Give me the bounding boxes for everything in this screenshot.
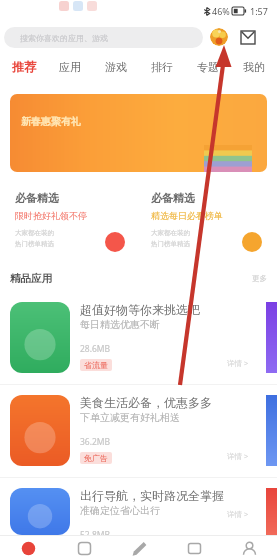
staticText: 游戏 xyxy=(105,60,127,74)
staticText: 免广告 xyxy=(84,453,108,463)
staticText: 28.6MB xyxy=(80,343,111,355)
button[interactable]: 我的 xyxy=(231,53,277,80)
staticText: 详情 > xyxy=(227,358,249,368)
button[interactable]: Home xyxy=(0,536,56,560)
staticText: 每日精选优惠不断 xyxy=(80,318,160,331)
button[interactable]: 专题 xyxy=(185,53,231,80)
staticText: 详情 > xyxy=(227,509,249,519)
staticText: 搜索你喜欢的应用、游戏 xyxy=(20,33,108,43)
staticText: 46% xyxy=(212,5,230,17)
button[interactable]: 美食生活必备，优惠多多 xyxy=(0,385,277,477)
staticText: 精品应用 xyxy=(10,272,52,285)
staticText: 排行 xyxy=(151,60,173,74)
staticText: 大家都在装的 xyxy=(15,229,54,237)
staticText: 超值好物等你来挑选吧 xyxy=(80,302,200,317)
staticText: 推荐 xyxy=(12,59,36,74)
staticText: 热门榜单精选 xyxy=(15,240,54,248)
staticText: 专题 xyxy=(197,60,219,74)
staticText: 下单立减更有好礼相送 xyxy=(80,411,180,424)
staticText: 出行导航，实时路况全掌握 xyxy=(80,488,224,503)
button[interactable]: 推荐 xyxy=(0,53,47,80)
staticText: 52.8MB xyxy=(80,529,111,535)
button[interactable]: 排行 xyxy=(139,53,185,80)
staticText: 应用 xyxy=(59,60,81,74)
button[interactable]: 应用 xyxy=(47,53,93,80)
staticText: 详情 > xyxy=(227,451,249,461)
staticText: 精选每日必看榜单 xyxy=(151,210,223,221)
staticText: 必备精选 xyxy=(151,191,195,205)
button[interactable]: Manage xyxy=(167,536,222,560)
staticText: 美食生活必备，优惠多多 xyxy=(80,395,212,410)
staticText: 大家都在装的 xyxy=(151,229,190,237)
staticText: 36.2MB xyxy=(80,436,111,448)
staticText: 新春惠聚有礼 xyxy=(21,115,81,128)
button[interactable]: Mine xyxy=(222,536,277,560)
button[interactable]: Messages xyxy=(239,28,257,46)
button[interactable]: Apps xyxy=(56,536,112,560)
button[interactable]: 必备精选 xyxy=(142,182,271,261)
staticText: 更多 xyxy=(252,274,267,283)
staticText: 我的 xyxy=(243,60,265,74)
button[interactable]: 更多 xyxy=(252,274,267,283)
button[interactable]: 超值好物等你来挑选吧 xyxy=(0,292,277,384)
button[interactable]: 必备精选 xyxy=(6,182,134,261)
staticText: 必备精选 xyxy=(15,191,59,205)
button[interactable]: 新春惠聚有礼 xyxy=(10,94,267,172)
button[interactable]: Profile xyxy=(210,28,228,46)
staticText: 准确定位省心出行 xyxy=(80,504,160,517)
button[interactable]: 游戏 xyxy=(93,53,139,80)
button[interactable]: 出行导航，实时路况全掌握 xyxy=(0,478,277,535)
button[interactable]: Games xyxy=(112,536,167,560)
staticText: 省流量 xyxy=(84,360,108,370)
staticText: 热门榜单精选 xyxy=(151,240,190,248)
staticText: 限时抢好礼领不停 xyxy=(15,210,87,221)
staticText: 1:57 xyxy=(250,5,268,17)
button[interactable]: 搜索你喜欢的应用、游戏 xyxy=(4,27,203,48)
